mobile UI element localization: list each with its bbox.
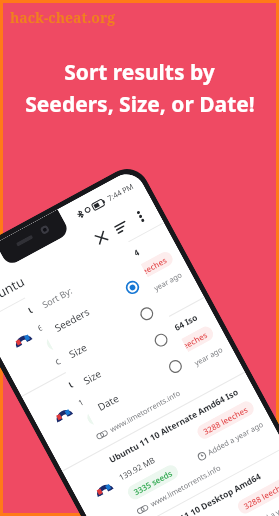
staticText: hack-cheat.org <box>10 8 116 27</box>
button[interactable]: Date <box>91 350 188 421</box>
button[interactable]: Ubuntu 11 10 Desktop Amd64 <box>0 223 205 397</box>
staticText: Ubuntu 11 10 Alternate Amd64 Iso <box>107 386 241 466</box>
button[interactable]: Clear search <box>88 224 115 251</box>
button[interactable]: Ubuntu 11 10 Alternate Amd64 Iso <box>62 372 279 516</box>
staticText: www.limetorrents.info <box>148 462 223 509</box>
staticText: Ubuntu 11 10 Desktop Amd64 <box>26 246 141 316</box>
staticText: 3335 seeds <box>91 392 134 423</box>
button[interactable]: Size <box>62 297 159 368</box>
staticText: ubuntu <box>0 272 27 309</box>
staticText: Size <box>66 340 90 361</box>
staticText: Added a year ago <box>165 344 224 383</box>
staticText: Date <box>95 391 122 414</box>
staticText: Sort results by <box>64 58 215 87</box>
button[interactable]: Seeders <box>48 271 145 342</box>
staticText: 2218 seeds <box>50 318 93 348</box>
button[interactable]: Ubuntu 11 10 Desktop Amd64 <box>103 447 279 516</box>
staticText: 3288 leeches <box>201 403 250 437</box>
button[interactable]: Ubuntu 11 10 Alternate Amd64 Iso <box>22 298 245 472</box>
staticText: 139.92 MB <box>76 379 116 408</box>
staticText: Added a year ago <box>206 419 265 457</box>
staticText: 3335 seeds <box>131 467 174 497</box>
button[interactable]: More options <box>127 203 154 230</box>
staticText: 1422 leeches <box>120 254 169 287</box>
staticText: Added a year ago <box>125 269 184 308</box>
staticText: 139.92 MB <box>117 454 157 483</box>
staticText: Ubuntu 11 10 Alternate Amd64 Iso <box>66 311 200 391</box>
staticText: Sort By: <box>40 284 74 310</box>
staticText: Ubuntu 11 10 Desktop Amd64 <box>148 470 263 516</box>
staticText: 7:44 PM <box>105 181 136 203</box>
staticText: 3288 leeches <box>241 478 279 511</box>
staticText: www.limetorrents.info <box>108 388 182 434</box>
button[interactable]: Size <box>77 323 174 395</box>
staticText: www.limetorrents.info <box>67 313 141 359</box>
button[interactable]: Sort <box>107 214 134 241</box>
staticText: Added a year ago <box>246 494 279 516</box>
staticText: Seeders <box>52 304 92 335</box>
staticText: Size <box>81 366 104 388</box>
staticText: Seeders, Size, or Date! <box>25 90 255 119</box>
staticText: 695.21 MB <box>35 304 76 333</box>
staticText: 3288 leeches <box>160 329 210 362</box>
